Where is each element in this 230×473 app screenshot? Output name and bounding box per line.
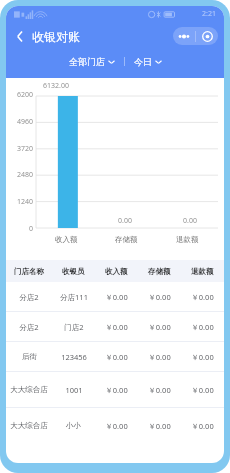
staticText: ￥0.00 [148, 322, 171, 332]
staticText: 0.00 [183, 216, 197, 226]
staticText: 123456 [61, 352, 87, 362]
staticText: ￥0.00 [105, 385, 128, 395]
button[interactable]: 大大综合店 [6, 372, 224, 407]
staticText: 存储额 [148, 267, 171, 276]
staticText: 2480 [6, 170, 33, 180]
staticText: ￥0.00 [105, 352, 128, 362]
button[interactable]: Back [12, 26, 28, 47]
staticText: 小小 [66, 421, 81, 430]
staticText: 存储额 [115, 235, 138, 244]
staticText: ￥0.00 [191, 322, 214, 332]
staticText: 今日 [134, 56, 152, 67]
staticText: 收银对账 [32, 29, 80, 44]
staticText: 2:21 [202, 9, 216, 19]
button[interactable]: 全部门店 [66, 54, 118, 69]
staticText: ￥0.00 [191, 352, 214, 362]
staticText: 退款额 [176, 235, 199, 244]
staticText: 6132.00 [43, 81, 69, 91]
staticText: ￥0.00 [148, 292, 171, 302]
staticText: 门店2 [64, 322, 84, 332]
staticText: ￥0.00 [191, 421, 214, 431]
button[interactable]: 大大综合店 [6, 408, 224, 443]
staticText: 分店111 [60, 292, 88, 302]
staticText: 全部门店 [69, 56, 105, 67]
button[interactable]: Menu and close [173, 27, 218, 45]
button[interactable]: 后街 [6, 342, 224, 371]
staticText: 分店2 [19, 292, 39, 302]
staticText: ￥0.00 [191, 292, 214, 302]
staticText: ￥0.00 [105, 292, 128, 302]
staticText: 退款额 [191, 267, 214, 276]
staticText: ￥0.00 [191, 385, 214, 395]
staticText: 1240 [6, 197, 33, 207]
staticText: 6200 [6, 90, 33, 100]
staticText: 分店2 [19, 322, 39, 332]
staticText: ￥0.00 [148, 385, 171, 395]
staticText: ￥0.00 [105, 322, 128, 332]
staticText: 门店名称 [14, 267, 44, 276]
staticText: 后街 [22, 352, 37, 361]
staticText: ￥0.00 [148, 352, 171, 362]
staticText: ￥0.00 [105, 421, 128, 431]
button[interactable]: 今日 [131, 54, 165, 69]
staticText: 收入额 [55, 235, 78, 244]
staticText: 收入额 [105, 267, 128, 276]
staticText: 3720 [6, 144, 33, 154]
staticText: 4960 [6, 117, 33, 127]
staticText: 大大综合店 [10, 385, 48, 394]
staticText: ￥0.00 [148, 421, 171, 431]
staticText: 0.00 [118, 216, 132, 226]
staticText: 1001 [65, 385, 83, 395]
staticText: 收银员 [62, 267, 85, 276]
staticText: 大大综合店 [10, 421, 48, 430]
button[interactable]: 分店2 [6, 312, 224, 341]
button[interactable]: 分店2 [6, 282, 224, 311]
staticText: 0 [6, 224, 33, 234]
